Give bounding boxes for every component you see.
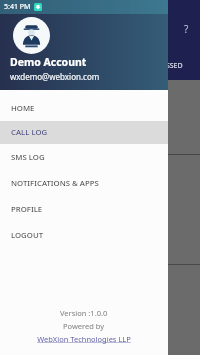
staticText: ? [184, 22, 189, 36]
staticText: wxdemo@webxion.com [10, 71, 100, 82]
staticText: SMS LOG [11, 152, 45, 163]
button[interactable]: HOME [0, 95, 168, 121]
button[interactable]: Help [176, 19, 196, 39]
staticText: NOTIFICATIONS & APPS [11, 178, 99, 189]
staticText: WebXion Technologies LLP [37, 334, 131, 344]
button[interactable]: MISSED [157, 56, 183, 76]
button[interactable]: WebXion Technologies LLP [37, 334, 131, 344]
staticText: MISSED [157, 61, 183, 71]
button[interactable]: LOGOUT [0, 222, 168, 248]
button[interactable]: SMS LOG [0, 144, 168, 170]
staticText: HOME [11, 103, 35, 114]
staticText: CALL LOG [11, 127, 48, 138]
button[interactable]: CALL LOG [0, 121, 168, 144]
staticText: LOGOUT [11, 230, 44, 241]
staticText: Version :1.0.0 [60, 308, 108, 318]
button[interactable]: NOTIFICATIONS & APPS [0, 170, 168, 196]
button[interactable]: PROFILE [0, 196, 168, 222]
staticText: PROFILE [11, 204, 43, 215]
staticText: Powered by [63, 321, 105, 331]
staticText: Demo Account [10, 55, 87, 69]
staticText: 5:41 PM [4, 2, 31, 12]
